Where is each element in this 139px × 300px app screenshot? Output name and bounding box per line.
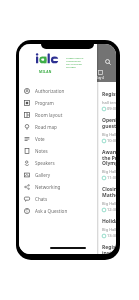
staticText: 09:00 - 10:00 (107, 106, 116, 111)
button[interactable]: Vote (19, 133, 97, 145)
staticText: 11:00 - 12:30 (107, 175, 116, 180)
staticText: Opening speech, guests (102, 117, 116, 130)
staticText: INTERNATIONAL (66, 57, 84, 60)
staticText: Authorization (35, 88, 65, 94)
staticText: Program (35, 100, 54, 106)
button[interactable]: Room layout (19, 109, 97, 121)
button[interactable]: Chats (19, 193, 97, 205)
button[interactable]: Search (105, 59, 111, 65)
staticText: Registration of installs and social (102, 244, 116, 254)
staticText: Vote (35, 136, 45, 142)
button[interactable]: Authorization (19, 85, 97, 97)
staticText: Closing speech, Mathematics (102, 186, 116, 199)
staticText: MILAN (39, 70, 52, 74)
staticText: Registration (102, 91, 116, 98)
staticText: OF LANGUAGE (66, 63, 82, 66)
staticText: Road map (35, 124, 57, 130)
button[interactable]: Gallery (19, 169, 97, 181)
button[interactable]: Program (19, 97, 97, 109)
staticText: ASSOCIATION (66, 60, 81, 63)
staticText: 13:30 - 14:30 (107, 233, 116, 238)
staticText: Big Hall (102, 132, 116, 137)
button[interactable]: Closing speech, Mathematics (102, 186, 116, 218)
button[interactable]: Notes (19, 145, 97, 157)
staticText: Holiday (102, 218, 116, 225)
button[interactable]: Day 4 (95, 70, 105, 80)
staticText: hall terrace (102, 100, 116, 105)
button[interactable]: Road map (19, 121, 97, 133)
staticText: 12:30 - 13:30 (107, 207, 116, 212)
button[interactable]: Day 1 (30, 70, 40, 80)
staticText: Chats (35, 196, 48, 202)
staticText: CENTRES (66, 66, 76, 69)
staticText: Networking (35, 184, 61, 190)
staticText: Gallery (35, 172, 51, 178)
button[interactable]: Registration (102, 91, 116, 117)
staticText: Big Hall (102, 169, 116, 174)
button[interactable]: Networking (19, 181, 97, 193)
button[interactable]: Registration of installs and social (102, 244, 116, 254)
staticText: Notes (35, 148, 48, 154)
button[interactable]: Speakers (19, 157, 97, 169)
staticText: Awards ceremony of the President of the … (102, 149, 116, 167)
staticText: Big Hall (102, 227, 116, 232)
staticText: Speakers (35, 160, 55, 166)
staticText: Day 4 (96, 76, 104, 80)
button[interactable]: Opening speech, guests (102, 117, 116, 149)
staticText: Big Hall (102, 201, 116, 206)
button[interactable]: Awards ceremony of the President of the … (102, 149, 116, 186)
staticText: Program (35, 58, 56, 65)
staticText: 10:00 - 11:00 (107, 138, 116, 143)
staticText: Room layout (35, 112, 63, 118)
button[interactable]: Holiday (102, 218, 116, 244)
button[interactable]: Ask a Question (19, 205, 97, 217)
staticText: Ask a Question (35, 208, 68, 214)
